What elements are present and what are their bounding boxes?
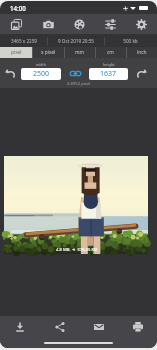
- button[interactable]: pixel: [0, 47, 32, 58]
- staticText: 14:00: [10, 4, 26, 12]
- button[interactable]: Share: [40, 316, 79, 338]
- button[interactable]: 1637: [89, 68, 128, 80]
- button[interactable]: Settings: [126, 14, 157, 34]
- button[interactable]: Redo: [133, 65, 149, 81]
- button[interactable]: Save: [0, 316, 40, 338]
- button[interactable]: inch: [126, 47, 157, 58]
- button[interactable]: Adjust: [95, 14, 126, 34]
- button[interactable]: mm: [64, 47, 95, 58]
- button[interactable]: Print: [118, 316, 157, 338]
- button[interactable]: Undo: [2, 65, 18, 81]
- staticText: pixel: [11, 49, 22, 56]
- staticText: cm: [107, 49, 114, 56]
- staticText: 4.8 MB ➜ 576.25 KB: [56, 247, 97, 253]
- staticText: 500 kb: [123, 38, 138, 44]
- staticText: 9 Oct 2019 20:55: [58, 38, 94, 44]
- staticText: x pixel: [41, 49, 56, 56]
- staticText: 4.8952 pixel: [67, 81, 91, 87]
- button[interactable]: Open image: [0, 14, 32, 34]
- staticText: 1637: [100, 69, 117, 79]
- button[interactable]: Filters: [64, 14, 95, 34]
- staticText: 2500: [33, 69, 50, 79]
- staticText: height: [103, 62, 115, 67]
- staticText: 3465 x 2259: [11, 38, 37, 44]
- staticText: inch: [137, 49, 147, 56]
- button[interactable]: Camera: [32, 14, 64, 34]
- staticText: mm: [75, 49, 84, 56]
- button[interactable]: cm: [95, 47, 126, 58]
- button[interactable]: Email: [79, 316, 118, 338]
- staticText: width: [36, 62, 47, 67]
- button[interactable]: x pixel: [32, 47, 64, 58]
- button[interactable]: Link aspect ratio: [67, 65, 83, 81]
- button[interactable]: 2500: [21, 68, 61, 80]
